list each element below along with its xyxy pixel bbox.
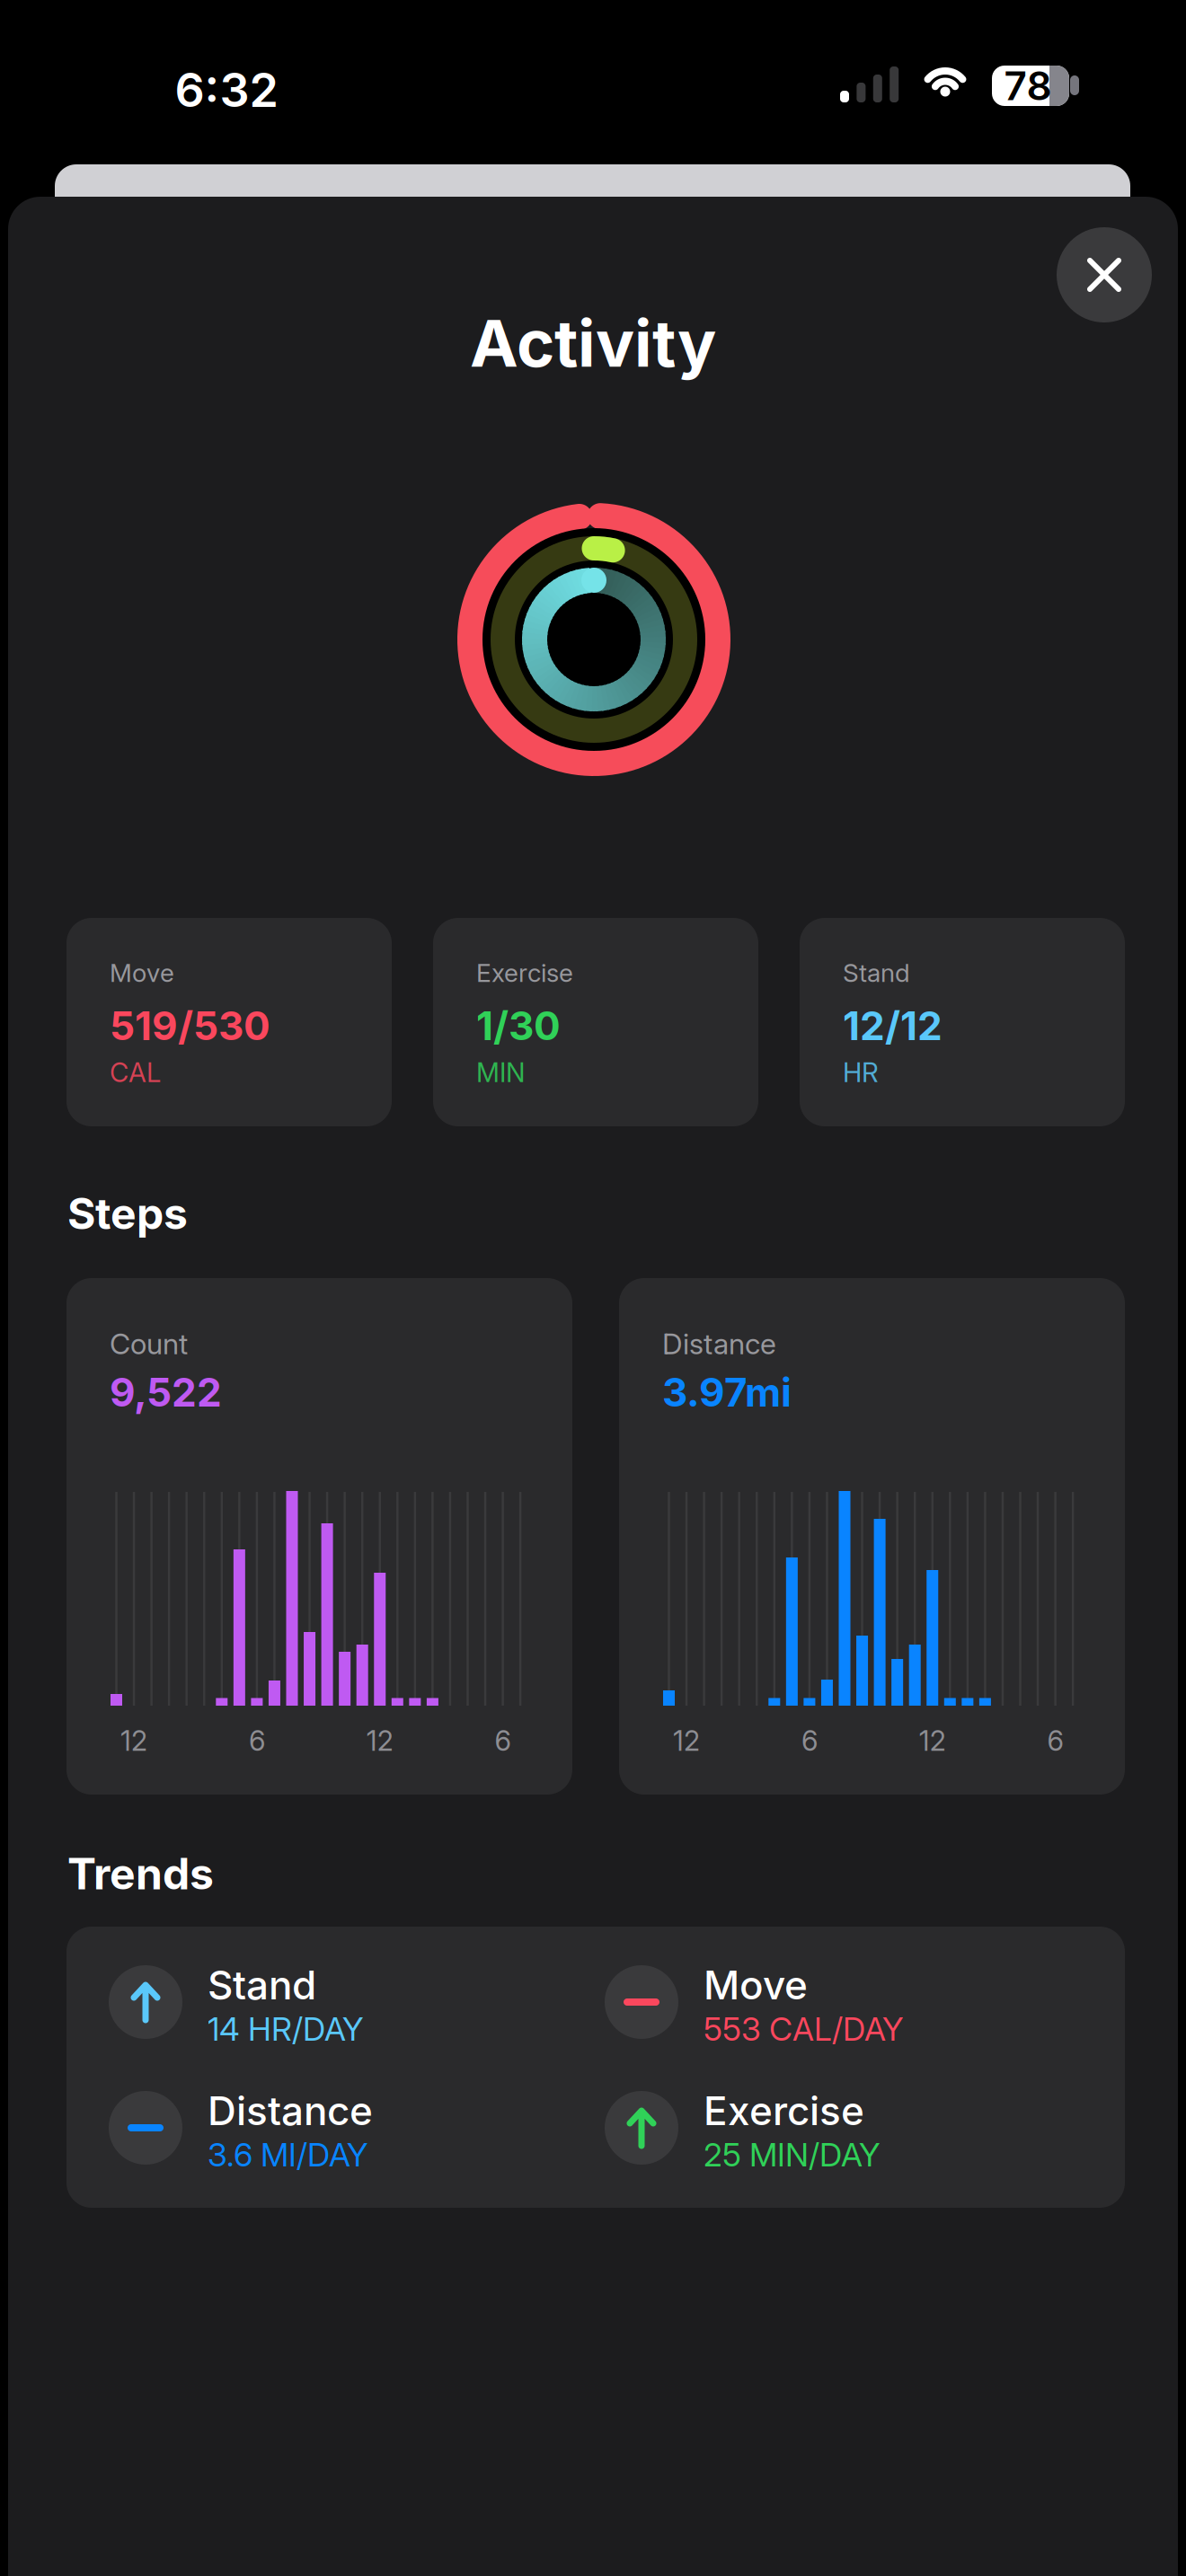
staticText: Distance xyxy=(208,2087,373,2134)
staticText: 6 xyxy=(801,1724,818,1757)
staticText: CAL xyxy=(110,1057,161,1088)
staticText: Exercise xyxy=(704,2087,864,2134)
staticText: 12 xyxy=(919,1724,946,1757)
staticText: 6 xyxy=(1047,1724,1063,1757)
button[interactable]: Close xyxy=(1057,227,1152,322)
staticText: 6:32 xyxy=(175,62,278,117)
staticText: 6 xyxy=(495,1724,511,1757)
staticText: Move xyxy=(110,958,174,988)
staticText: 6 xyxy=(249,1724,265,1757)
staticText: Distance xyxy=(662,1327,776,1361)
staticText: Stand xyxy=(208,1962,316,2008)
staticText: 3.6 MI/DAY xyxy=(208,2136,368,2174)
staticText: Steps xyxy=(67,1188,188,1239)
staticText: 78 xyxy=(1004,62,1052,109)
staticText: Trends xyxy=(67,1848,214,1899)
staticText: 12/12 xyxy=(843,1002,943,1049)
staticText: 1/30 xyxy=(476,1002,561,1049)
staticText: 519/530 xyxy=(110,1002,270,1049)
staticText: Exercise xyxy=(476,958,573,988)
staticText: 9,522 xyxy=(110,1369,222,1415)
staticText: 553 CAL/DAY xyxy=(704,2010,904,2048)
staticText: 12 xyxy=(366,1724,393,1757)
staticText: Count xyxy=(110,1327,188,1361)
staticText: 12 xyxy=(673,1724,700,1757)
staticText: MIN xyxy=(476,1057,526,1088)
staticText: Activity xyxy=(470,305,716,381)
staticText: Stand xyxy=(843,958,910,988)
staticText: Move xyxy=(704,1962,808,2008)
staticText: 12 xyxy=(120,1724,147,1757)
staticText: HR xyxy=(843,1057,879,1088)
staticText: 3.97mi xyxy=(662,1369,792,1415)
staticText: 25 MIN/DAY xyxy=(704,2136,881,2174)
staticText: 14 HR/DAY xyxy=(208,2010,364,2048)
